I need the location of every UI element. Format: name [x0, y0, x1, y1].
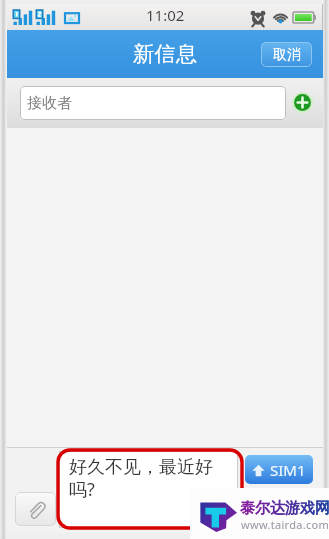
staticText: 新信息	[133, 41, 198, 67]
button[interactable]: Attach	[15, 492, 56, 526]
staticText: 好久不见，最近好吗?	[69, 456, 232, 502]
button[interactable]: 好久不见，最近好吗?	[59, 451, 238, 528]
button[interactable]: 取消	[261, 42, 312, 67]
staticText: 11:02	[146, 5, 185, 25]
staticText: SIM1	[270, 460, 306, 480]
button[interactable]: 接收者	[20, 86, 286, 120]
staticText: 取消	[273, 46, 301, 64]
staticText: 泰尔达游戏网	[240, 499, 329, 518]
staticText: 接收者	[27, 94, 72, 113]
button[interactable]: SIM1	[245, 455, 313, 484]
staticText: www.tairda.com	[241, 517, 329, 532]
button[interactable]: Add recipient	[292, 92, 313, 113]
